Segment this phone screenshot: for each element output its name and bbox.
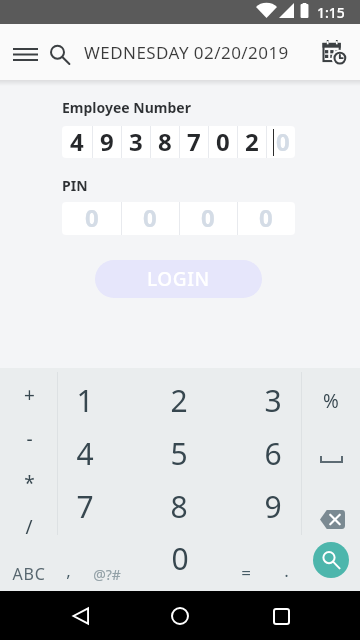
staticText: * [24,470,35,496]
staticText: ABC [12,563,46,585]
button[interactable]: - [5,419,53,459]
staticText: 9 [100,126,114,157]
button[interactable]: = [222,552,270,592]
button[interactable]: Home [156,592,204,640]
staticText: 4 [70,126,84,157]
button[interactable]: Back [56,592,104,640]
staticText: 0 [276,126,290,157]
staticText: 0 [216,126,230,157]
button[interactable]: Search [313,542,349,578]
button[interactable]: 9 [249,486,297,526]
button[interactable]: % [307,381,355,421]
staticText: 0 [259,202,273,234]
staticText: 0 [143,202,157,234]
staticText: - [26,426,33,452]
staticText: + [24,382,35,408]
staticText: 3 [264,380,282,420]
staticText: 1:15 [317,3,345,22]
staticText: 6 [264,433,282,473]
staticText: 2 [245,126,259,157]
button[interactable]: Calendar [316,34,352,70]
staticText: % [323,388,339,414]
staticText: 0 [85,202,99,234]
staticText: . [284,559,289,582]
staticText: / [25,514,33,540]
staticText: @?# [93,565,121,584]
button[interactable]: + [5,375,53,415]
button[interactable]: LOGIN [95,260,262,298]
button[interactable]: 2 [155,380,203,420]
button[interactable]: ABC [5,554,53,594]
button[interactable]: Menu [9,38,41,70]
staticText: 7 [187,126,201,157]
button[interactable]: Search [44,39,76,71]
button[interactable]: Space [313,441,349,477]
staticText: PIN [62,176,88,195]
staticText: 3 [129,126,143,157]
button[interactable]: 4 [62,126,295,158]
button[interactable]: 7 [61,486,109,526]
staticText: 8 [170,486,188,526]
staticText: WEDNESDAY 02/20/2019 [84,41,289,64]
staticText: 9 [264,486,282,526]
button[interactable]: . [262,550,310,590]
staticText: Employee Number [62,98,191,117]
button[interactable]: 8 [155,486,203,526]
staticText: 5 [170,433,188,473]
staticText: 1 [76,380,94,420]
staticText: = [241,561,251,584]
button[interactable]: 3 [249,380,297,420]
staticText: 7 [76,486,94,526]
button[interactable]: 5 [155,433,203,473]
staticText: 2 [170,380,188,420]
button[interactable]: Recents [257,592,305,640]
button[interactable]: 4 [61,433,109,473]
staticText: 0 [201,202,215,234]
staticText: 0 [171,538,189,578]
button[interactable]: * [5,463,53,503]
button[interactable]: @?# [83,554,131,594]
button[interactable]: 1 [61,380,109,420]
button[interactable]: 0 [62,202,295,235]
staticText: , [66,559,71,582]
button[interactable]: / [5,507,53,547]
staticText: 8 [158,126,172,157]
button[interactable]: , [44,550,92,590]
button[interactable]: 0 [156,538,204,578]
staticText: LOGIN [147,266,210,292]
staticText: 4 [76,433,94,473]
button[interactable]: Backspace [314,504,350,534]
button[interactable]: 6 [249,433,297,473]
